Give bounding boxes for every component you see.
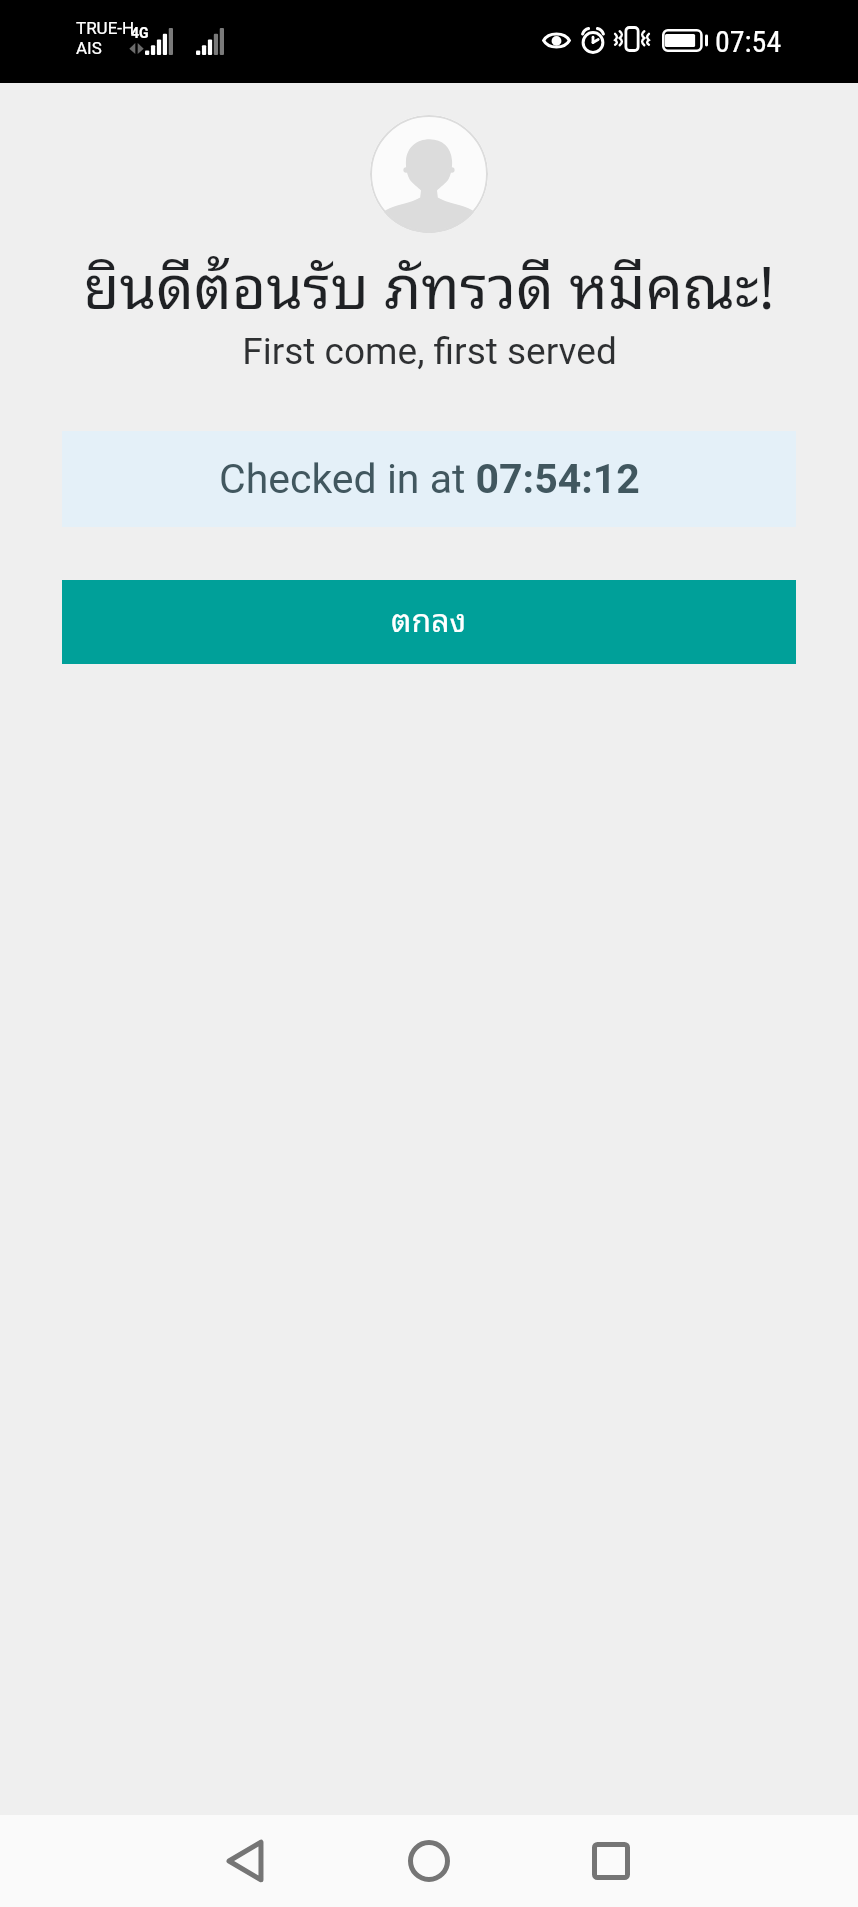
staticText: TRUE-H (76, 18, 135, 38)
button[interactable]: Back (197, 1815, 293, 1907)
button[interactable]: Home (381, 1815, 477, 1907)
staticText: ตกลง (391, 592, 467, 643)
staticText: 07:54 (715, 24, 782, 59)
staticText: First come, first served (242, 330, 617, 373)
button[interactable]: ตกลง (62, 580, 796, 664)
staticText: Checked in at 07:54:12 (219, 455, 640, 503)
staticText: ยินดีต้อนรับ ภัทรวดี หมีคณะ! (83, 235, 775, 329)
staticText: 4G (131, 25, 149, 41)
button[interactable]: Recent apps (563, 1815, 659, 1907)
staticText: AIS (76, 38, 102, 58)
